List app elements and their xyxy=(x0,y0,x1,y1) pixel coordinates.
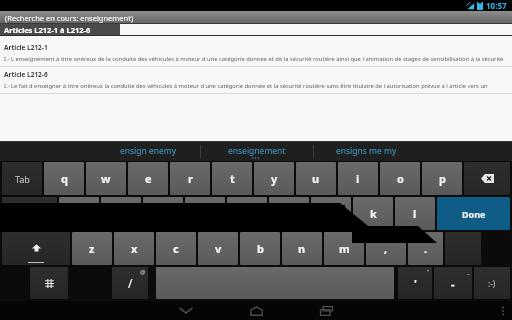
button[interactable]: j xyxy=(311,197,351,230)
staticText: / xyxy=(128,275,133,291)
button[interactable] xyxy=(2,197,57,230)
button[interactable]: i xyxy=(338,162,378,195)
staticText: r xyxy=(188,171,193,186)
button[interactable]: Shift xyxy=(2,232,70,265)
button[interactable]: Space xyxy=(156,267,394,299)
button[interactable]: Done xyxy=(437,197,510,230)
staticText: y xyxy=(271,171,278,186)
staticText: Article L212-6 xyxy=(4,70,48,79)
button[interactable]: a xyxy=(59,197,99,230)
staticText: Article L212-1 xyxy=(4,43,48,52)
button[interactable]: c xyxy=(156,232,196,265)
staticText: Articles L212-1 à L212-6 xyxy=(4,25,91,35)
staticText: t xyxy=(230,171,235,186)
button[interactable]: Input method settings xyxy=(30,267,68,299)
button[interactable]: o xyxy=(380,162,420,195)
staticText: , xyxy=(384,241,388,256)
button[interactable]: g xyxy=(227,197,267,230)
staticText: " xyxy=(427,268,430,275)
staticText: _ xyxy=(467,268,470,275)
staticText: . xyxy=(424,241,428,256)
staticText: i xyxy=(356,171,360,186)
staticText: I.- L enseignement à titre onéreux de la… xyxy=(4,55,508,63)
staticText: c xyxy=(173,241,179,256)
staticText: ' xyxy=(414,276,417,291)
button[interactable]: :-) xyxy=(474,267,510,299)
staticText: ensign enemy xyxy=(120,145,177,157)
button[interactable]: l xyxy=(395,197,435,230)
button[interactable]: v xyxy=(198,232,238,265)
staticText: :-) xyxy=(488,278,496,289)
button[interactable]: z xyxy=(72,232,112,265)
staticText: b xyxy=(257,241,264,256)
staticText: @ xyxy=(140,268,146,276)
staticText: w xyxy=(101,171,111,186)
button[interactable]: Hide keyboard xyxy=(166,301,206,320)
button[interactable]: Backspace xyxy=(464,162,510,195)
button[interactable]: . xyxy=(408,232,443,265)
staticText: n xyxy=(298,241,306,256)
staticText: ensigns me my xyxy=(336,145,397,157)
button[interactable]: ensigns me my xyxy=(314,141,418,161)
staticText: u xyxy=(312,171,320,186)
staticText: (Recherche en cours: enseignement) xyxy=(5,13,134,23)
staticText: p xyxy=(439,171,446,186)
button[interactable]: y xyxy=(254,162,294,195)
staticText: e xyxy=(145,171,152,186)
staticText: q xyxy=(61,171,68,186)
staticText: - xyxy=(451,276,455,291)
staticText: x xyxy=(131,241,138,256)
button[interactable]: x xyxy=(114,232,154,265)
staticText: k xyxy=(370,206,377,221)
button[interactable]: m xyxy=(324,232,364,265)
button[interactable]: r xyxy=(170,162,210,195)
button[interactable]: More options xyxy=(494,301,512,320)
staticText: o xyxy=(397,171,404,186)
staticText: z xyxy=(89,241,95,256)
button[interactable]: q xyxy=(44,162,84,195)
button[interactable]: enseignement xyxy=(201,141,313,161)
button[interactable]: d xyxy=(143,197,183,230)
button[interactable]: Recent apps xyxy=(306,301,346,320)
staticText: Done xyxy=(462,208,486,220)
staticText: 10:57 xyxy=(486,0,507,11)
button[interactable]: u xyxy=(296,162,336,195)
button[interactable]: e xyxy=(128,162,168,195)
staticText: Tab xyxy=(15,173,30,185)
staticText: v xyxy=(215,241,222,256)
button[interactable]: k xyxy=(353,197,393,230)
button[interactable]: Tab xyxy=(2,162,42,195)
button[interactable]: Article L212-1 xyxy=(0,40,512,66)
button[interactable]: ensign enemy xyxy=(96,141,200,161)
button[interactable]: Article L212-6 xyxy=(0,67,512,93)
button[interactable]: t xyxy=(212,162,252,195)
button[interactable]: n xyxy=(282,232,322,265)
button[interactable]: b xyxy=(240,232,280,265)
button[interactable]: w xyxy=(86,162,126,195)
button[interactable]: f xyxy=(185,197,225,230)
button[interactable]: Home xyxy=(236,301,276,320)
staticText: l xyxy=(413,206,417,221)
button[interactable]: , xyxy=(366,232,406,265)
button[interactable]: s xyxy=(101,197,141,230)
button[interactable]: Articles L212-1 à L212-6 xyxy=(0,24,120,36)
button[interactable]: p xyxy=(422,162,462,195)
staticText: enseignement xyxy=(228,145,286,157)
button[interactable]: h xyxy=(269,197,309,230)
button[interactable]: ' xyxy=(398,267,432,299)
staticText: m xyxy=(339,241,350,256)
staticText: I.- Le fait d enseigner à titre onéreux … xyxy=(4,82,508,90)
button[interactable]: / xyxy=(112,267,148,299)
button[interactable]: - xyxy=(434,267,472,299)
